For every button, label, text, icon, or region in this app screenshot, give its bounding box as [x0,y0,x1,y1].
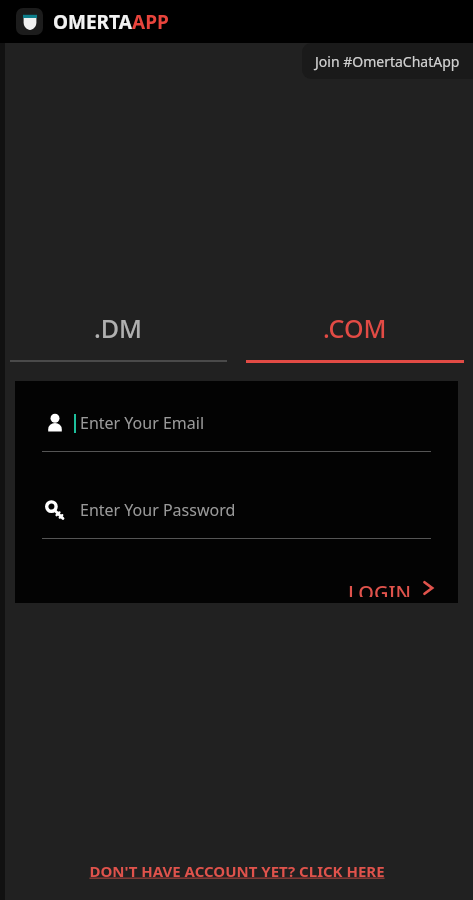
staticText: APP [132,9,169,35]
button[interactable]: Email field [15,408,458,452]
button[interactable]: Password field [15,495,458,539]
staticText: .COM [323,311,387,345]
staticText: Enter Your Email [80,412,205,434]
button[interactable]: .DM [0,302,236,354]
other: Password field [45,500,65,520]
other: Email field [45,413,65,433]
button[interactable]: DON'T HAVE ACCOUNT YET? CLICK HERE [79,855,395,887]
staticText: OMERTA [53,9,132,35]
staticText: DON'T HAVE ACCOUNT YET? CLICK HERE [89,861,385,881]
button[interactable]: LOGIN [342,573,442,603]
staticText: .DM [94,311,143,345]
staticText: Join #OmertaChatApp [315,52,460,71]
other: OmertaApp logo [16,8,43,35]
button[interactable]: Join #OmertaChatApp [302,43,473,79]
staticText: Enter Your Password [80,499,236,521]
staticText: LOGIN [348,579,412,597]
button[interactable]: .COM [236,302,473,354]
